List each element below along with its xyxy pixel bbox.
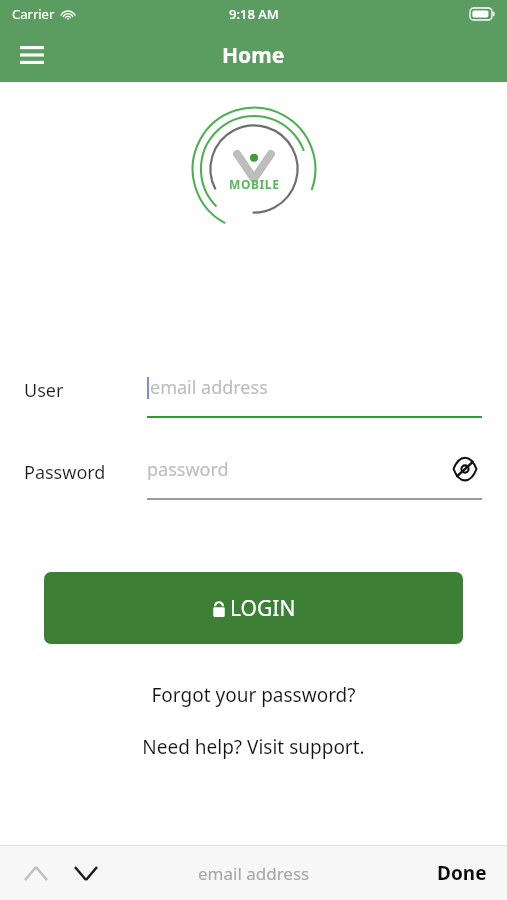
staticText: Need help? Visit support. (142, 734, 365, 760)
button[interactable]: User (0, 362, 507, 418)
staticText: Done (437, 860, 487, 886)
button[interactable]: Next field (64, 851, 108, 895)
button[interactable]: Password (0, 444, 507, 500)
button[interactable]: LOGIN (44, 572, 463, 644)
staticText: User (24, 378, 64, 403)
staticText: Forgot your password? (151, 682, 356, 708)
button[interactable]: Previous field (14, 851, 58, 895)
button[interactable]: Need help? Visit support. (0, 734, 507, 760)
button[interactable]: Done (427, 852, 497, 894)
staticText: Home (222, 41, 285, 70)
button[interactable]: Show password (448, 452, 482, 486)
staticText: 9:18 AM (229, 5, 279, 23)
staticText: Carrier (12, 5, 55, 23)
button[interactable]: Forgot your password? (0, 682, 507, 708)
staticText: MOBILE (229, 176, 280, 192)
staticText: LOGIN (230, 594, 296, 623)
staticText: email address (198, 862, 310, 885)
staticText: password (147, 457, 229, 482)
staticText: Password (24, 460, 106, 485)
staticText: email address (150, 375, 268, 400)
button[interactable]: Menu (10, 33, 54, 77)
